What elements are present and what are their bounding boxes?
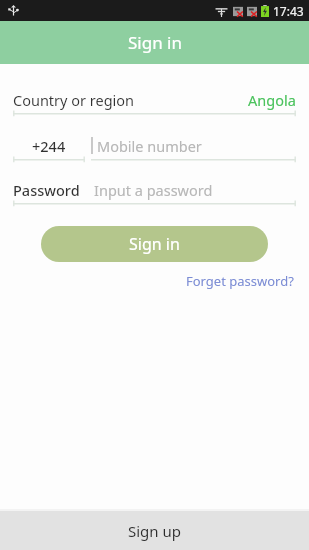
staticText: Sign in (129, 233, 180, 255)
staticText: Sign in (128, 31, 182, 54)
staticText: Forget password? (186, 272, 294, 290)
staticText: +244 (32, 136, 66, 156)
other: Wi-Fi (215, 6, 228, 17)
staticText: Password (13, 180, 80, 200)
button[interactable]: Forget password? (184, 269, 296, 293)
other: No SIM card (233, 6, 243, 17)
staticText: Input a password (94, 180, 213, 200)
other: No SIM card (247, 6, 257, 17)
staticText: 17:43 (273, 3, 304, 19)
button[interactable]: Sign up (0, 511, 309, 550)
button[interactable]: +244 (13, 133, 85, 158)
other: USB connected (8, 5, 19, 16)
button[interactable]: Password (13, 178, 296, 208)
button[interactable]: Mobile number (91, 133, 296, 158)
staticText: Sign up (128, 521, 181, 541)
staticText: Angola (248, 90, 296, 110)
button[interactable]: Country or region (13, 88, 296, 118)
staticText: Mobile number (97, 136, 202, 156)
button[interactable]: Sign in (41, 226, 268, 262)
staticText: Country or region (13, 90, 135, 110)
other: Battery charging (261, 5, 269, 17)
